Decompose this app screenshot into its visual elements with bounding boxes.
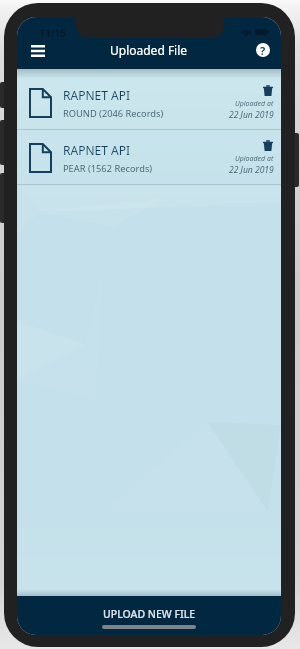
staticText: RAPNET API	[63, 142, 130, 158]
staticText: RAPNET API	[63, 87, 130, 103]
staticText: 11:15	[39, 26, 66, 40]
staticText: UPLOAD NEW FILE	[103, 607, 196, 621]
staticText: Uploaded at	[235, 154, 274, 164]
button[interactable]: Help	[250, 37, 276, 63]
button[interactable]: Menu	[17, 37, 58, 64]
button[interactable]: RAPNET API	[17, 75, 281, 129]
staticText: ROUND (2046 Records)	[63, 107, 164, 120]
staticText: ?	[260, 43, 266, 58]
staticText: Uploaded File	[110, 42, 188, 58]
button[interactable]: RAPNET API	[17, 130, 281, 184]
button[interactable]: Delete	[260, 83, 274, 97]
staticText: 22 Jun 2019	[229, 109, 274, 121]
button[interactable]: Delete	[260, 138, 274, 152]
staticText: Uploaded at	[235, 99, 274, 109]
button[interactable]: UPLOAD NEW FILE	[17, 596, 281, 635]
staticText: 22 Jun 2019	[229, 164, 274, 176]
staticText: PEAR (1562 Records)	[63, 162, 153, 175]
